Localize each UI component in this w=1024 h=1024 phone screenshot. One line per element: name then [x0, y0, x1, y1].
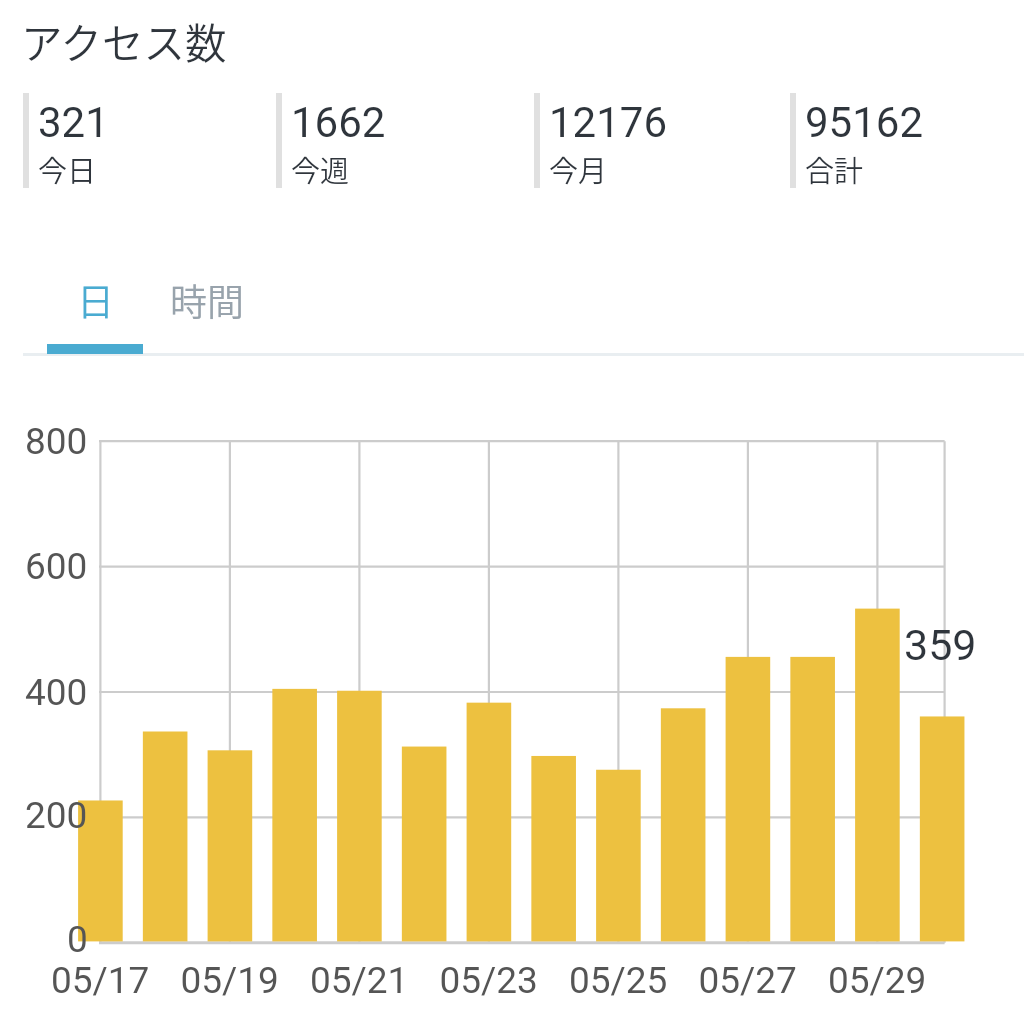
- button[interactable]: 日: [47, 272, 143, 354]
- button[interactable]: 321: [23, 93, 253, 193]
- staticText: 95162: [805, 98, 924, 147]
- button[interactable]: 12176: [534, 93, 764, 193]
- staticText: 今週: [291, 148, 350, 190]
- staticText: アクセス数: [21, 11, 227, 71]
- staticText: 321: [38, 98, 109, 147]
- staticText: 合計: [805, 148, 864, 190]
- button[interactable]: アクセス数の日別グラフ: [0, 380, 1024, 1024]
- staticText: 12176: [549, 98, 668, 147]
- button[interactable]: 1662: [276, 93, 506, 193]
- staticText: 時間: [170, 273, 244, 327]
- staticText: 1662: [291, 98, 386, 147]
- staticText: 日: [77, 273, 114, 327]
- button[interactable]: 95162: [790, 93, 1020, 193]
- button[interactable]: 時間: [151, 272, 262, 354]
- staticText: 今月: [549, 148, 608, 190]
- staticText: 今日: [38, 148, 97, 190]
